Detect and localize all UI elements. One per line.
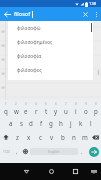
button[interactable]: 3	[21, 101, 31, 116]
staticText: u	[64, 107, 68, 115]
staticText: t	[45, 107, 48, 115]
staticText: i	[75, 107, 77, 115]
button[interactable]: 9	[81, 101, 91, 116]
staticText: φιλοσοφία	[17, 53, 42, 60]
staticText: n	[72, 133, 76, 141]
button[interactable]: Clear	[78, 7, 92, 21]
staticText: y	[54, 107, 58, 115]
staticText: x	[27, 133, 31, 141]
staticText: φιλοσοφημένος	[17, 39, 53, 46]
staticText: a	[9, 119, 13, 127]
button[interactable]: 8	[71, 101, 81, 116]
button[interactable]: k	[76, 116, 86, 130]
staticText: f	[40, 119, 43, 127]
staticText: d	[29, 119, 33, 127]
button[interactable]: j	[66, 116, 76, 130]
button[interactable]: v	[46, 130, 57, 144]
button[interactable]: φιλοσοφημένος	[8, 35, 93, 49]
button[interactable]: x	[23, 130, 35, 144]
staticText: e	[24, 107, 28, 115]
staticText: filosof	[14, 10, 31, 18]
button[interactable]: English	[30, 148, 78, 155]
staticText: 3	[25, 102, 27, 106]
button[interactable]: Shift	[0, 130, 11, 144]
staticText: 4	[35, 102, 37, 106]
staticText: l	[90, 119, 92, 127]
button[interactable]: 6	[51, 101, 61, 116]
staticText: h	[59, 119, 63, 127]
staticText: 6	[55, 102, 57, 106]
button[interactable]: b	[57, 130, 68, 144]
button[interactable]: 7	[61, 101, 71, 116]
staticText: .	[81, 148, 83, 155]
staticText: p	[94, 107, 98, 115]
button[interactable]: Home	[39, 163, 63, 180]
button[interactable]: More options	[92, 7, 101, 21]
staticText: b	[61, 133, 65, 141]
staticText: s	[20, 119, 23, 127]
staticText: 1	[5, 102, 7, 106]
button[interactable]: Change keyboard language	[21, 144, 30, 159]
staticText: 9	[85, 102, 87, 106]
button[interactable]: Backspace	[90, 130, 101, 144]
button[interactable]: Back	[0, 7, 14, 21]
staticText: 8	[75, 102, 77, 106]
staticText: 2	[15, 102, 17, 106]
button[interactable]: h	[56, 116, 66, 130]
button[interactable]: 5	[41, 101, 51, 116]
staticText: 5	[45, 102, 47, 106]
staticText: o	[84, 107, 88, 115]
button[interactable]: a	[5, 116, 16, 130]
staticText: k	[79, 119, 83, 127]
staticText: 7	[65, 102, 67, 106]
button[interactable]: Recent apps	[63, 163, 87, 180]
staticText: ?123	[3, 150, 10, 154]
staticText: w	[14, 107, 19, 115]
button[interactable]: z	[11, 130, 23, 144]
staticText: q	[4, 107, 8, 115]
staticText: z	[16, 133, 19, 141]
button[interactable]: d	[26, 116, 36, 130]
button[interactable]: 1	[0, 101, 11, 116]
button[interactable]: Search	[89, 147, 99, 157]
button[interactable]: ?123	[0, 144, 13, 159]
button[interactable]: ,	[13, 144, 21, 159]
button[interactable]: l	[86, 116, 96, 130]
staticText: 138	[89, 1, 97, 7]
button[interactable]: Back	[14, 163, 39, 180]
staticText: v	[50, 133, 54, 141]
staticText: English	[48, 149, 60, 154]
button[interactable]: c	[35, 130, 46, 144]
staticText: r	[35, 107, 38, 115]
staticText: j	[70, 119, 72, 127]
staticText: φιλοσοφώ	[17, 25, 41, 32]
button[interactable]: g	[46, 116, 56, 130]
staticText: g	[49, 119, 53, 127]
button[interactable]: Hide keyboard	[87, 163, 101, 180]
button[interactable]: 4	[31, 101, 41, 116]
staticText: φιλόσοφος	[17, 67, 42, 74]
button[interactable]: s	[16, 116, 26, 130]
button[interactable]: .	[78, 144, 86, 159]
button[interactable]: 2	[11, 101, 21, 116]
staticText: c	[39, 133, 42, 141]
staticText: m	[82, 133, 88, 141]
staticText: ,	[16, 148, 18, 155]
staticText: 0	[95, 102, 97, 106]
button[interactable]: n	[68, 130, 79, 144]
button[interactable]: m	[79, 130, 90, 144]
button[interactable]: f	[36, 116, 46, 130]
button[interactable]: 0	[91, 101, 101, 116]
button[interactable]: φιλοσοφία	[8, 49, 93, 63]
button[interactable]: φιλοσοφώ	[8, 21, 93, 35]
button[interactable]: φιλόσοφος	[8, 63, 93, 77]
